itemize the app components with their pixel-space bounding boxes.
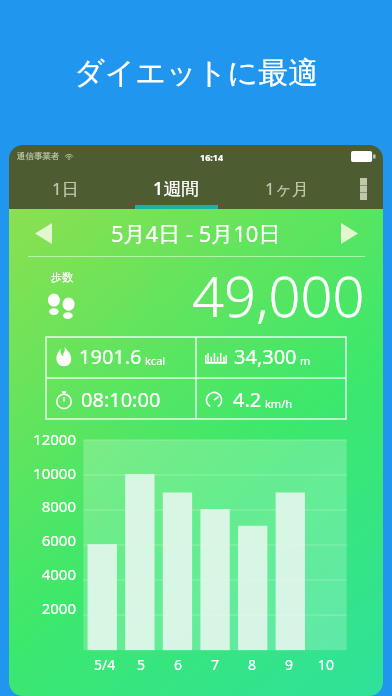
staticText: 34,300 [234, 343, 297, 370]
staticText: 1日 [52, 177, 79, 200]
button[interactable]: 34,300 [196, 335, 346, 378]
staticText: 1ヶ月 [265, 177, 310, 200]
staticText: 2000 [9, 598, 76, 618]
staticText: 5月4日 - 5月10日 [111, 218, 281, 248]
staticText: 通信事業者 [17, 151, 60, 162]
button[interactable]: More options [343, 168, 383, 209]
staticText: 8000 [9, 496, 76, 516]
button[interactable]: Previous week [23, 213, 63, 253]
staticText: 6 [174, 655, 183, 674]
button[interactable]: 08:10:00 [46, 378, 196, 421]
staticText: 歩数 [51, 270, 73, 284]
staticText: 5/4 [94, 655, 116, 674]
staticText: 4.2 [233, 386, 262, 413]
staticText: kcal [145, 353, 166, 368]
staticText: 1週間 [153, 176, 200, 201]
staticText: 7 [211, 655, 220, 674]
button[interactable]: Next week [329, 213, 369, 253]
staticText: 16:14 [200, 151, 224, 163]
button[interactable]: 1ヶ月 [232, 168, 343, 209]
staticText: km/h [265, 396, 293, 411]
staticText: 4000 [9, 564, 76, 584]
staticText: 1901.6 [79, 343, 142, 370]
staticText: m [300, 353, 311, 368]
staticText: 5 [137, 655, 146, 674]
staticText: 08:10:00 [81, 386, 161, 413]
staticText: 9 [285, 655, 294, 674]
staticText: 12000 [9, 429, 76, 449]
button[interactable]: 4.2 [196, 378, 346, 421]
staticText: 8 [248, 655, 257, 674]
staticText: 49,000 [192, 257, 365, 331]
button[interactable]: 1901.6 [46, 335, 196, 378]
staticText: ダイエットに最適 [74, 54, 319, 92]
staticText: 10 [318, 655, 335, 674]
staticText: 10000 [9, 463, 76, 483]
button[interactable]: 1週間 [121, 168, 232, 209]
staticText: 6000 [9, 530, 76, 550]
button[interactable]: 1日 [9, 168, 121, 209]
